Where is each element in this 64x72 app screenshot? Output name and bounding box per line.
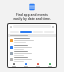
staticText: Find app and events easily by date and t… xyxy=(0,13,64,21)
button[interactable] xyxy=(8,50,56,56)
button[interactable]: Menu xyxy=(8,24,56,29)
button[interactable] xyxy=(8,44,56,50)
other: Menu xyxy=(10,26,12,28)
button[interactable] xyxy=(8,56,56,62)
button[interactable]: Home xyxy=(8,62,20,67)
button[interactable]: App icon xyxy=(28,3,36,11)
button[interactable] xyxy=(8,37,56,44)
button[interactable]: Events xyxy=(32,62,44,67)
button[interactable] xyxy=(20,31,32,33)
button[interactable]: Tasks xyxy=(44,62,56,67)
button[interactable]: Calendar xyxy=(20,62,32,67)
